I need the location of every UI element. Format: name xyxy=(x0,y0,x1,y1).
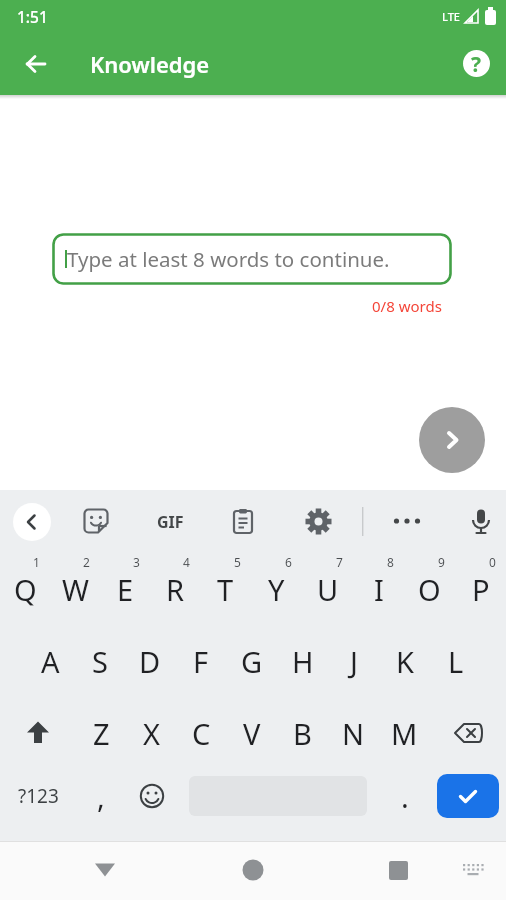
button[interactable]: T xyxy=(200,553,251,625)
button[interactable]: M xyxy=(379,697,430,769)
button[interactable] xyxy=(419,407,485,473)
button[interactable]: I xyxy=(353,553,404,625)
button[interactable]: A xyxy=(25,625,75,697)
staticText: ?123 xyxy=(18,783,59,809)
staticText: N xyxy=(342,714,365,753)
staticText: Knowledge xyxy=(90,49,210,79)
staticText: LTE xyxy=(442,9,460,24)
staticText: GIF xyxy=(157,511,184,533)
button[interactable] xyxy=(430,769,506,823)
staticText: W xyxy=(62,570,89,609)
staticText: , xyxy=(97,777,105,816)
staticText: 9 xyxy=(438,554,445,570)
staticText: V xyxy=(243,714,261,753)
button[interactable]: , xyxy=(76,769,126,823)
staticText: R xyxy=(166,570,185,609)
staticText: 4 xyxy=(183,554,190,570)
button[interactable] xyxy=(462,503,500,541)
staticText: U xyxy=(317,570,339,609)
staticText: O xyxy=(418,570,441,609)
button[interactable] xyxy=(0,697,76,769)
button[interactable]: Type at least 8 words to continue. xyxy=(52,233,452,285)
button[interactable]: G xyxy=(226,625,277,697)
staticText: 1 xyxy=(33,554,40,570)
button[interactable] xyxy=(388,502,426,540)
button[interactable]: ?123 xyxy=(0,769,76,823)
button[interactable] xyxy=(14,42,58,86)
staticText: H xyxy=(292,642,314,681)
staticText: Type at least 8 words to continue. xyxy=(67,245,390,273)
staticText: 2 xyxy=(83,554,90,570)
button[interactable] xyxy=(13,503,51,541)
button[interactable]: H xyxy=(277,625,328,697)
button[interactable]: R xyxy=(150,553,200,625)
button[interactable] xyxy=(81,846,129,894)
button[interactable]: ? xyxy=(463,50,490,77)
staticText: 1:51 xyxy=(17,6,48,27)
staticText: 7 xyxy=(336,554,343,570)
button[interactable]: GIF xyxy=(150,502,190,542)
button[interactable] xyxy=(374,846,422,894)
staticText: E xyxy=(117,570,134,609)
button[interactable]: B xyxy=(277,697,328,769)
staticText: . xyxy=(401,777,409,816)
button[interactable]: N xyxy=(328,697,379,769)
button[interactable]: . xyxy=(379,769,430,823)
button[interactable] xyxy=(77,502,115,540)
button[interactable]: U xyxy=(302,553,353,625)
staticText: B xyxy=(293,714,312,753)
staticText: 0 xyxy=(489,554,496,570)
staticText: C xyxy=(192,714,211,753)
staticText: J xyxy=(350,642,358,681)
button[interactable]: C xyxy=(176,697,226,769)
button[interactable]: K xyxy=(379,625,430,697)
staticText: 8 xyxy=(387,554,394,570)
button[interactable]: O xyxy=(404,553,455,625)
button[interactable]: W xyxy=(50,553,100,625)
staticText: G xyxy=(241,642,263,681)
staticText: K xyxy=(396,642,414,681)
staticText: X xyxy=(143,714,160,753)
button[interactable] xyxy=(430,697,506,769)
button[interactable]: J xyxy=(328,625,379,697)
button[interactable]: V xyxy=(226,697,277,769)
button[interactable]: X xyxy=(126,697,176,769)
button[interactable]: F xyxy=(175,625,226,697)
staticText: ? xyxy=(471,50,482,77)
staticText: Y xyxy=(268,570,285,609)
staticText: M xyxy=(391,714,418,753)
button[interactable]: Z xyxy=(76,697,126,769)
button[interactable]: E xyxy=(100,553,150,625)
button[interactable] xyxy=(299,502,337,540)
staticText: T xyxy=(217,570,234,609)
button[interactable]: S xyxy=(75,625,125,697)
staticText: D xyxy=(139,642,161,681)
button[interactable] xyxy=(224,502,262,540)
staticText: P xyxy=(472,570,490,609)
staticText: F xyxy=(193,642,209,681)
button[interactable]: Q xyxy=(0,553,50,625)
button[interactable] xyxy=(229,846,277,894)
button[interactable]: D xyxy=(125,625,175,697)
staticText: A xyxy=(41,642,60,681)
button[interactable] xyxy=(449,846,497,894)
staticText: S xyxy=(92,642,108,681)
button[interactable]: Y xyxy=(251,553,302,625)
button[interactable]: P xyxy=(455,553,506,625)
staticText: I xyxy=(374,570,384,609)
staticText: 3 xyxy=(133,554,140,570)
button[interactable] xyxy=(126,769,177,823)
staticText: Z xyxy=(93,714,110,753)
staticText: 6 xyxy=(285,554,292,570)
staticText: Q xyxy=(14,570,37,609)
button[interactable]: L xyxy=(430,625,481,697)
button[interactable] xyxy=(189,769,367,823)
staticText: 0/8 words xyxy=(372,296,442,316)
staticText: 5 xyxy=(234,554,241,570)
staticText: L xyxy=(448,642,464,681)
